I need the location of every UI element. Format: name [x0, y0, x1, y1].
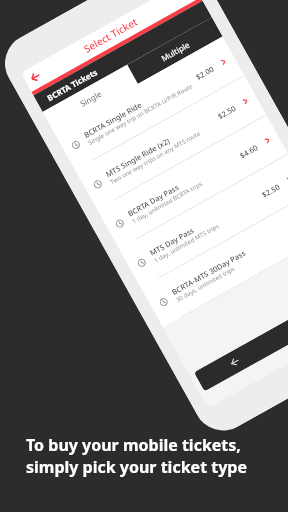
- staticText: Two one way trips on any MTS route: [109, 129, 202, 186]
- button[interactable]: Single: [43, 65, 138, 131]
- staticText: $2.50: [216, 103, 238, 121]
- staticText: Single one way trip on BCRTA U/P/R Route: [87, 82, 195, 147]
- staticText: MTS Day Pass: [148, 225, 196, 258]
- staticText: BCRTA Day Pass: [126, 182, 180, 218]
- staticText: 1 day, unlimited MTS trips: [153, 222, 220, 265]
- staticText: $2.50: [260, 181, 282, 200]
- staticText: To buy your mobile tickets,: [26, 434, 241, 456]
- staticText: BCRTA-MTS 30Day Pass: [170, 247, 248, 297]
- button[interactable]: BCRTA-MTS 30Day Pass: [141, 194, 288, 328]
- staticText: simply pick your ticket type: [26, 456, 247, 478]
- staticText: Single: [78, 88, 103, 109]
- staticText: $2.00: [194, 63, 216, 82]
- button[interactable]: BCRTA Day Pass: [97, 115, 288, 249]
- button[interactable]: MTS Day Pass: [119, 154, 288, 288]
- staticText: BCRTA Tickets: [45, 66, 99, 103]
- staticText: 30 days, unlimited trips: [175, 265, 236, 304]
- button[interactable]: MTS Single Ride (x2): [75, 76, 267, 210]
- staticText: 1 day, unlimited BCRTA trips: [131, 180, 204, 225]
- staticText: $4.60: [238, 142, 260, 161]
- button[interactable]: Back: [194, 280, 288, 391]
- staticText: Select Ticket: [81, 14, 140, 56]
- button[interactable]: BCRTA Single Ride: [53, 37, 245, 170]
- button[interactable]: Multiple: [127, 17, 223, 84]
- staticText: BCRTA Single Ride: [82, 99, 144, 140]
- staticText: MTS Single Ride (x2): [104, 135, 172, 179]
- staticText: Multiple: [159, 39, 191, 63]
